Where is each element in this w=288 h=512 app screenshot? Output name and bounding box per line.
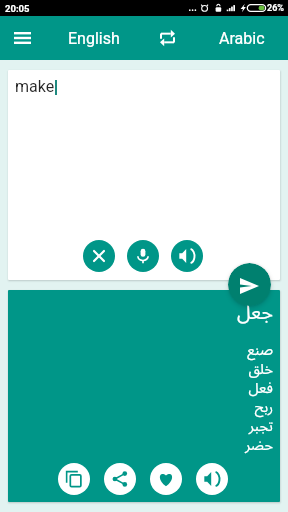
button[interactable]: Listen: [196, 463, 228, 495]
button[interactable]: Clear: [83, 240, 115, 272]
staticText: make: [15, 77, 55, 96]
button[interactable]: Translate: [228, 263, 271, 306]
button[interactable]: Favorite: [150, 463, 182, 495]
staticText: Arabic: [219, 29, 265, 48]
button[interactable]: Swap languages: [145, 16, 189, 60]
button[interactable]: Listen: [171, 240, 203, 272]
staticText: 26%: [267, 3, 284, 14]
staticText: English: [68, 29, 120, 48]
button[interactable]: Voice input: [127, 240, 159, 272]
button[interactable]: English: [50, 16, 138, 60]
staticText: صنع خلق فعل ربح تجبر حضر: [244, 343, 273, 457]
staticText: جعل: [237, 301, 273, 328]
button[interactable]: Share: [104, 463, 136, 495]
button[interactable]: Menu: [0, 16, 44, 60]
button[interactable]: Copy: [58, 463, 90, 495]
button[interactable]: Arabic: [198, 16, 286, 60]
staticText: 20:05: [5, 3, 30, 14]
